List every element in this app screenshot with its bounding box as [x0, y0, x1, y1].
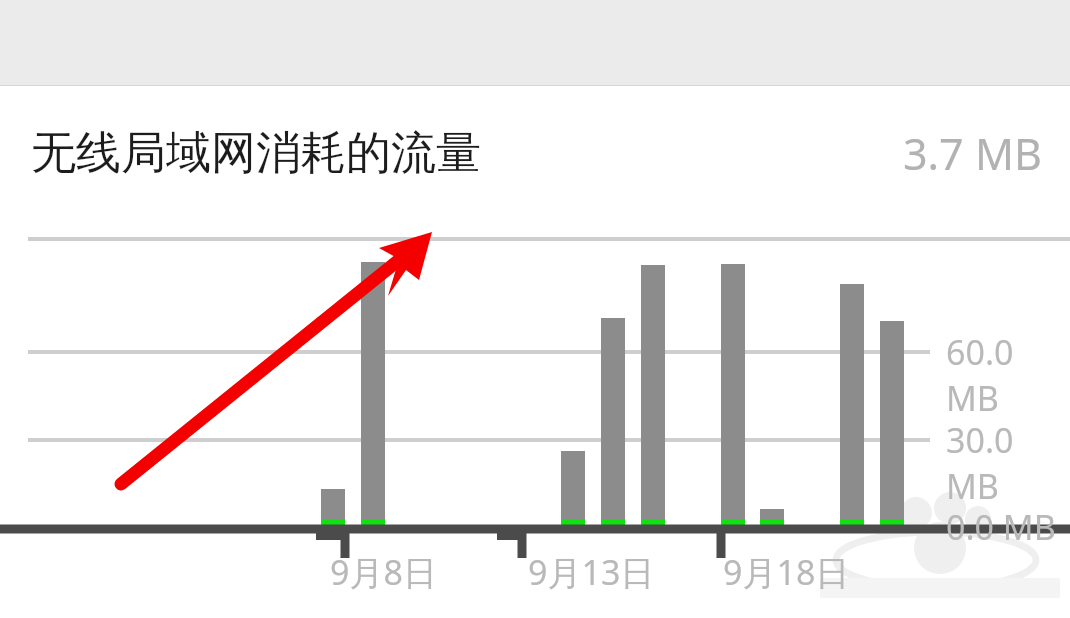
staticText: 30.0 MB [946, 417, 1070, 509]
staticText: 9月8日 [330, 549, 437, 595]
staticText: 无线局域网消耗的流量 [31, 125, 481, 182]
staticText: 0.0 MB [946, 504, 1056, 550]
other: Wi-Fi data usage bar chart [0, 0, 1070, 618]
staticText: 9月13日 [528, 549, 655, 595]
staticText: 60.0 MB [946, 329, 1070, 421]
staticText: 9月18日 [723, 549, 850, 595]
button[interactable]: 无线局域网消耗的流量 [0, 86, 1070, 220]
staticText: 3.7 MB [903, 124, 1042, 183]
